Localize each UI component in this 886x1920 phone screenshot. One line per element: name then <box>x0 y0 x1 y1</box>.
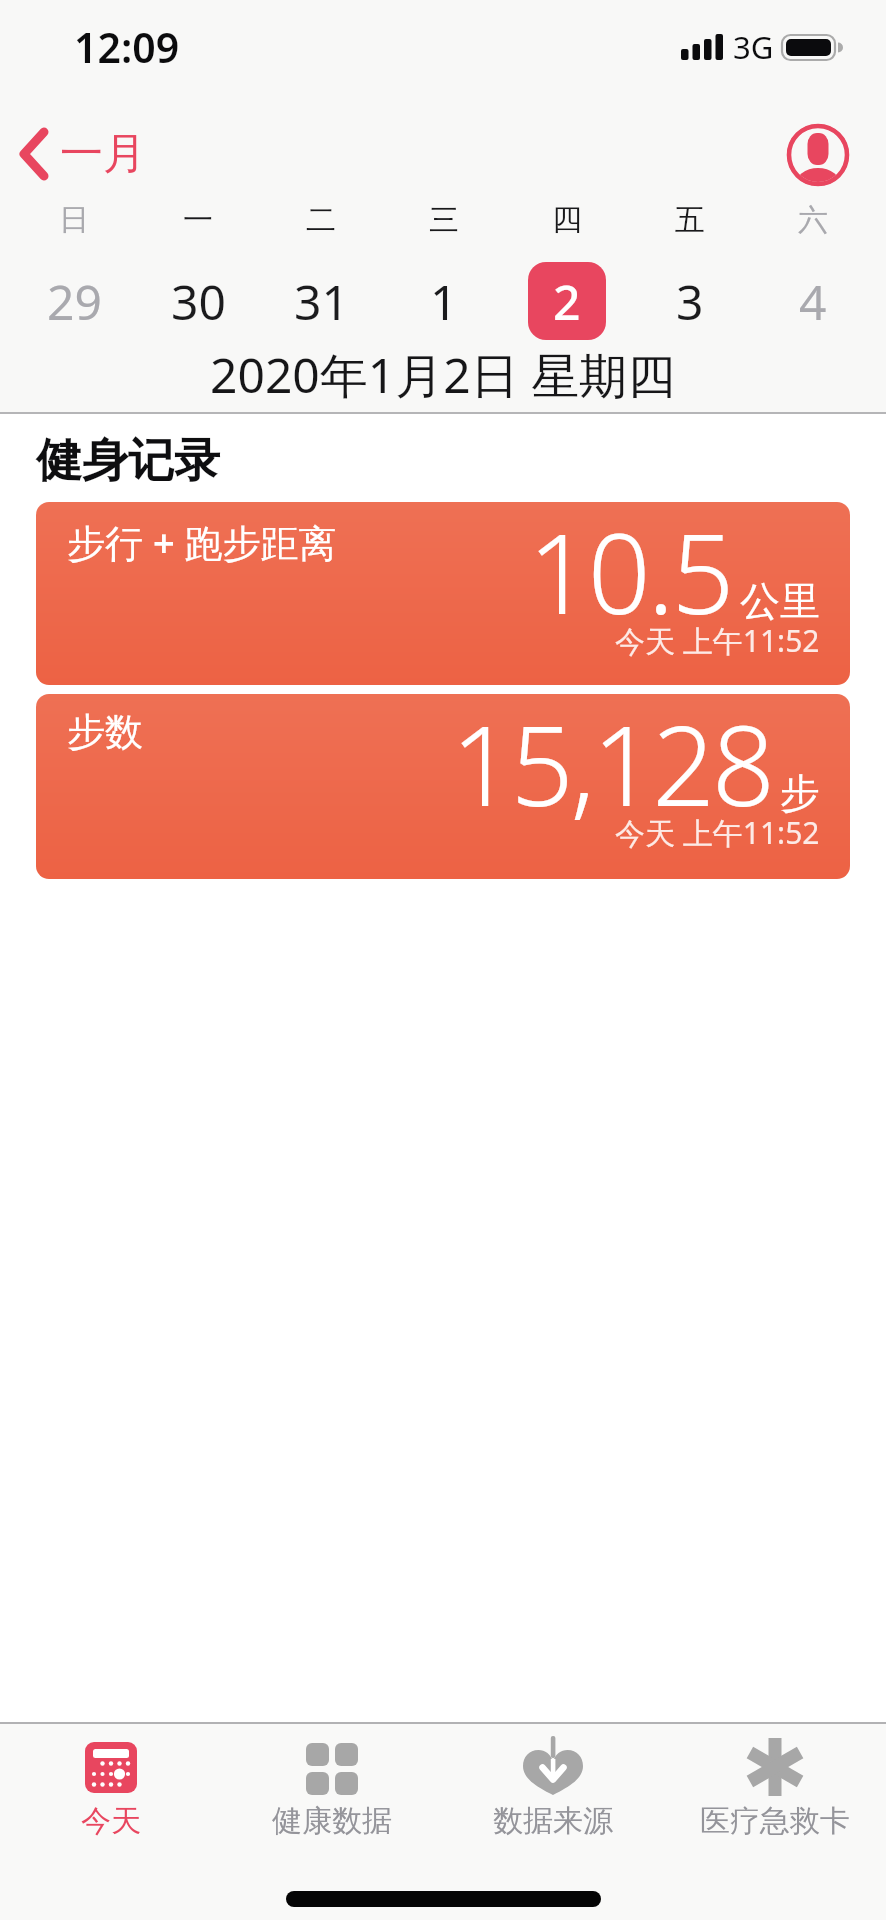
staticText: 12:09 <box>74 19 180 75</box>
staticText: 步数 <box>67 708 143 756</box>
staticText: 健康数据 <box>272 1802 392 1840</box>
staticText: 15,128 <box>451 694 772 838</box>
staticText: 三 <box>429 201 459 239</box>
staticText: 31 <box>294 269 349 334</box>
staticText: 2020年1月2日 星期四 <box>210 342 676 408</box>
staticText: 4 <box>799 269 827 334</box>
staticText: 2 <box>553 269 581 334</box>
button[interactable]: 健康数据 <box>221 1736 442 1840</box>
staticText: 步 <box>780 768 820 818</box>
staticText: 健身记录 <box>36 432 220 490</box>
staticText: 步行 + 跑步距离 <box>67 516 337 568</box>
staticText: 六 <box>798 201 828 239</box>
staticText: 29 <box>47 269 102 334</box>
staticText: 1 <box>430 269 458 334</box>
staticText: 日 <box>59 201 89 239</box>
button[interactable]: 数据来源 <box>442 1736 664 1840</box>
staticText: 二 <box>306 201 336 239</box>
staticText: 3G <box>733 26 774 68</box>
staticText: 一月 <box>60 127 146 181</box>
button[interactable]: 4 <box>774 262 852 340</box>
staticText: 3 <box>676 269 704 334</box>
button[interactable]: 3 <box>651 262 729 340</box>
button[interactable]: 29 <box>35 262 113 340</box>
button[interactable]: 2 <box>528 262 606 340</box>
staticText: 一 <box>183 201 213 239</box>
button[interactable]: 1 <box>405 262 483 340</box>
staticText: 今天 <box>81 1802 141 1840</box>
staticText: 数据来源 <box>493 1802 613 1840</box>
staticText: 10.5 <box>528 502 732 646</box>
staticText: 今天 上午11:52 <box>615 620 820 661</box>
staticText: 30 <box>171 269 226 334</box>
button[interactable]: 30 <box>159 262 237 340</box>
button[interactable]: 31 <box>282 262 360 340</box>
staticText: 四 <box>552 201 582 239</box>
staticText: 医疗急救卡 <box>700 1802 850 1840</box>
button[interactable]: 今天 <box>0 1736 221 1840</box>
staticText: 今天 上午11:52 <box>615 812 820 853</box>
staticText: 五 <box>675 201 705 239</box>
button[interactable] <box>786 123 850 187</box>
button[interactable]: 一月 <box>16 122 146 186</box>
staticText: 公里 <box>740 576 820 626</box>
button[interactable]: 步行 + 跑步距离 <box>36 502 850 685</box>
button[interactable]: 步数 <box>36 694 850 879</box>
button[interactable]: 医疗急救卡 <box>664 1736 886 1840</box>
